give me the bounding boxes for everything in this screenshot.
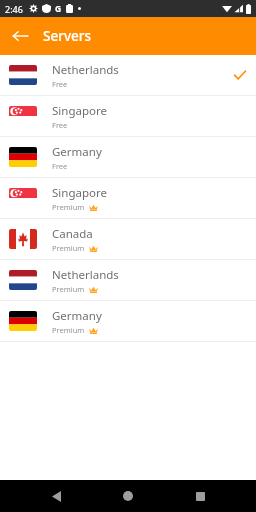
other: Selected	[230, 65, 250, 85]
button[interactable]: Canada	[0, 219, 256, 259]
staticText: Free	[52, 161, 68, 171]
staticText: Netherlands	[52, 267, 119, 283]
staticText: Singapore	[52, 185, 107, 201]
staticText: Servers	[43, 27, 92, 45]
staticText: Premium	[52, 243, 85, 253]
staticText: 2:46	[5, 3, 23, 15]
button[interactable]: Back	[40, 480, 72, 512]
button[interactable]: Germany	[0, 301, 256, 341]
button[interactable]: Singapore	[0, 178, 256, 218]
staticText: Free	[52, 120, 68, 130]
staticText: G	[55, 3, 62, 15]
staticText: Singapore	[52, 103, 107, 119]
button[interactable]: Singapore	[0, 96, 256, 136]
staticText: Canada	[52, 226, 93, 242]
button[interactable]: Germany	[0, 137, 256, 177]
button[interactable]: Home	[112, 480, 144, 512]
staticText: Premium	[52, 325, 85, 335]
staticText: Netherlands	[52, 62, 119, 78]
staticText: Germany	[52, 144, 102, 160]
button[interactable]: Netherlands	[0, 260, 256, 300]
staticText: Free	[52, 79, 68, 89]
button[interactable]: Recent apps	[184, 480, 216, 512]
staticText: Premium	[52, 202, 85, 212]
staticText: Premium	[52, 284, 85, 294]
button[interactable]: Netherlands	[0, 55, 256, 95]
button[interactable]: Back	[8, 24, 32, 48]
staticText: Germany	[52, 308, 102, 324]
